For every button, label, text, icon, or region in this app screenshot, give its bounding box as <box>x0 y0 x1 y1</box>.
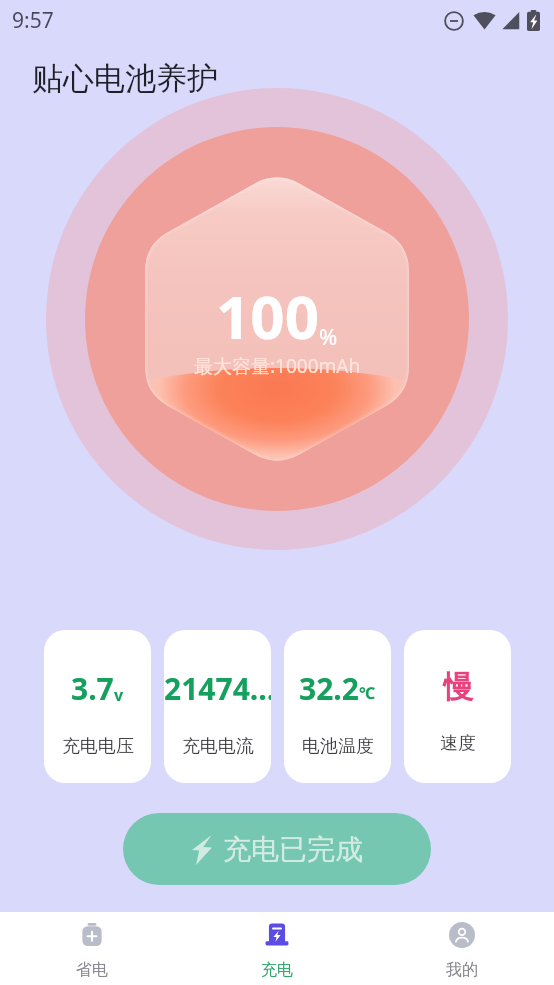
staticText: 充电 <box>261 960 293 980</box>
staticText: 慢 <box>443 668 473 706</box>
button[interactable]: 省电 <box>0 912 184 985</box>
staticText: 充电已完成 <box>223 832 363 867</box>
button[interactable]: 充电 <box>184 912 369 985</box>
button[interactable]: 21474… <box>164 630 271 783</box>
staticText: 充电电压 <box>62 735 134 758</box>
button[interactable]: 充电已完成 <box>123 813 431 885</box>
staticText: % <box>319 321 338 351</box>
staticText: ℃ <box>359 682 376 704</box>
button[interactable]: 慢 <box>404 630 511 783</box>
staticText: 9:57 <box>12 6 54 35</box>
button[interactable]: 3.7 <box>44 630 151 783</box>
staticText: 3.7 <box>71 668 114 709</box>
staticText: 21474… <box>164 668 271 709</box>
staticText: 最大容量:1000mAh <box>194 353 361 379</box>
staticText: 我的 <box>446 960 478 980</box>
staticText: 32.2 <box>299 668 359 709</box>
staticText: 贴心电池养护 <box>32 59 218 98</box>
button[interactable]: 32.2 <box>284 630 391 783</box>
staticText: 省电 <box>76 960 108 980</box>
staticText: v <box>114 684 124 706</box>
staticText: 速度 <box>440 732 476 755</box>
button[interactable]: 我的 <box>369 912 554 985</box>
staticText: 100 <box>216 275 319 357</box>
staticText: 充电电流 <box>182 735 254 758</box>
staticText: 电池温度 <box>302 735 374 758</box>
